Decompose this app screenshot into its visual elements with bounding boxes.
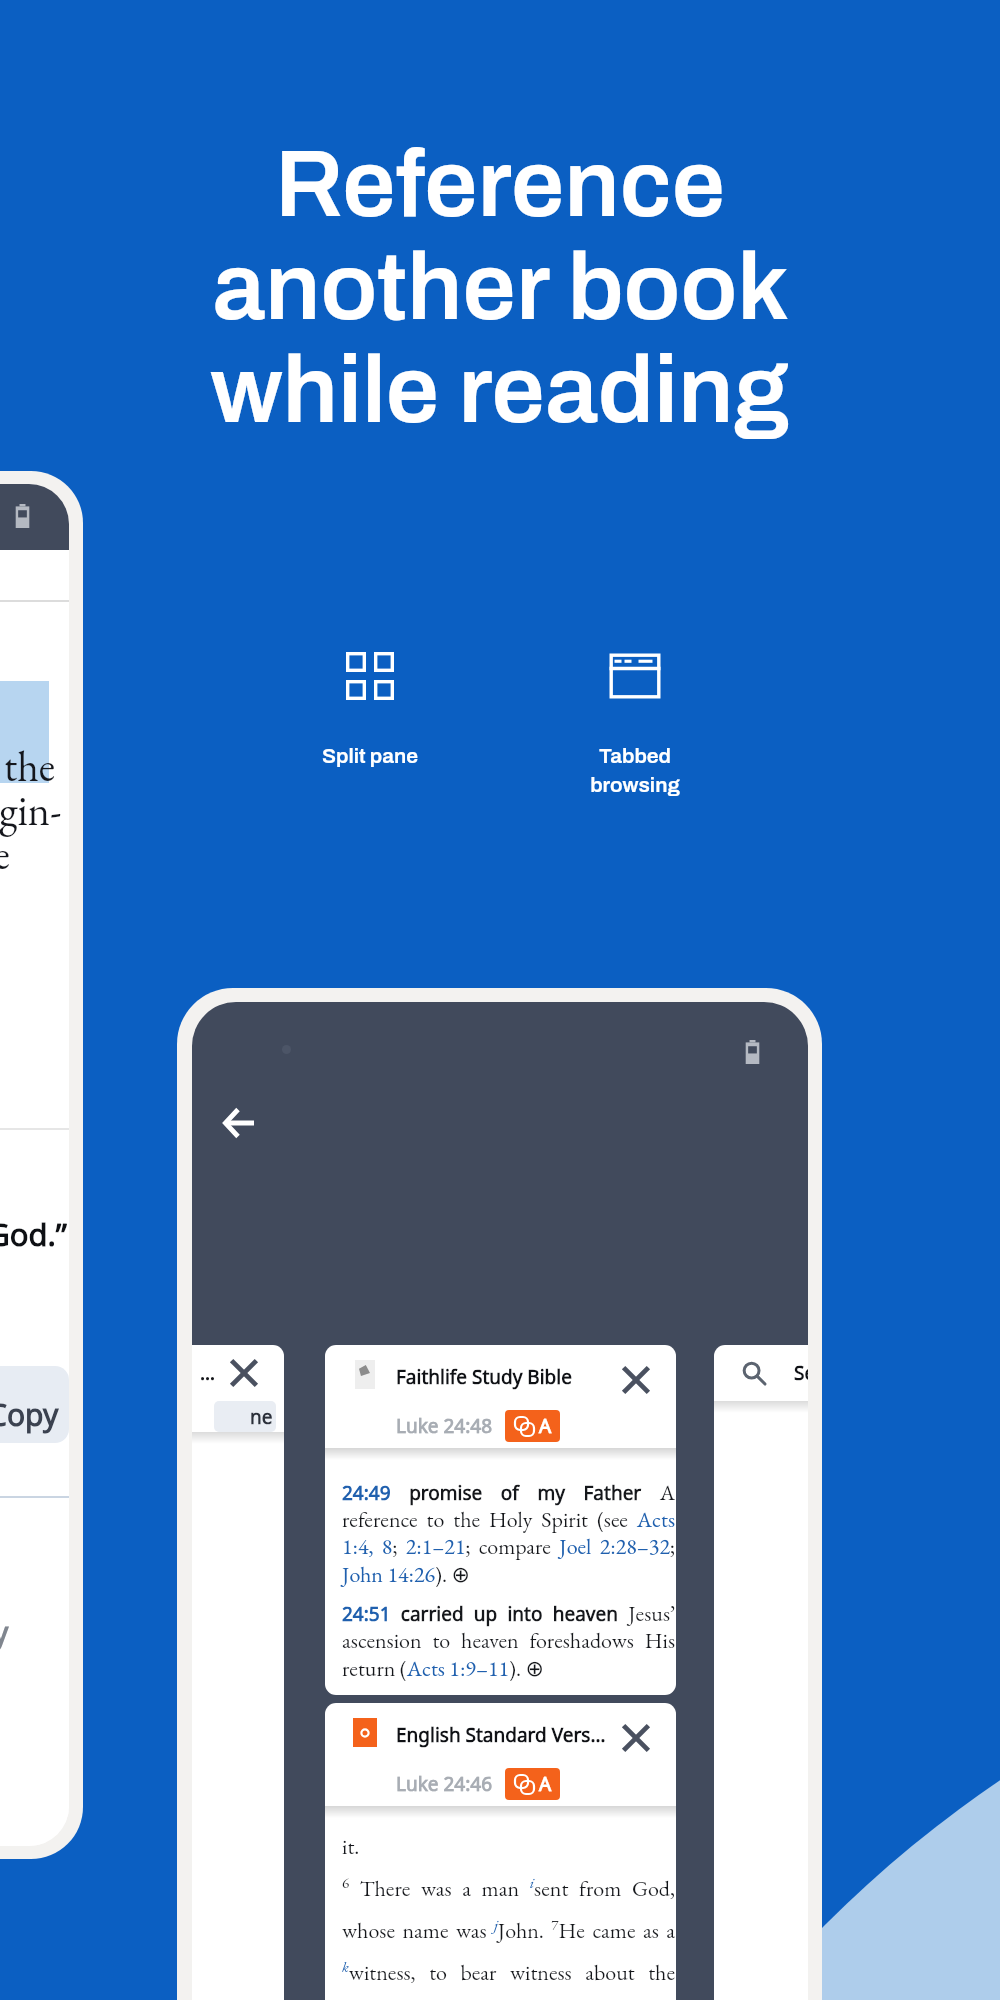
staticText: the Word was with the Lord, and the Word… [0,695,62,1101]
staticText: it. 6 There was a man isent from God, wh… [342,1832,675,2000]
staticText: ne [250,1404,273,1430]
staticText: Copy [0,1612,9,1653]
staticText: “…and the Word was God.” [0,1213,67,1255]
button[interactable]: Linked resources [505,1768,560,1800]
staticText: 24:51 carried up into heaven Jesus’ asce… [342,1599,675,1682]
staticText: Luke 24:48 [396,1413,493,1439]
button[interactable]: … [192,1345,284,2000]
staticText: Split pane [322,745,418,768]
button[interactable]: Copy [0,1366,69,1443]
button[interactable]: Linked resources [505,1410,560,1442]
button[interactable]: Faithlife Study Bible [325,1345,676,1695]
staticText: Reference [275,133,725,236]
staticText: A [539,1413,552,1439]
staticText: Tabbed browsing [590,745,680,797]
staticText: English Standard Vers… [396,1722,606,1748]
staticText: Copy [0,1394,59,1435]
button[interactable]: Search [714,1345,808,2000]
staticText: while reading [210,339,790,442]
button[interactable]: Tabbed browsing [555,648,715,797]
staticText: … [200,1360,216,1386]
button[interactable]: English Standard Vers… [325,1703,676,2000]
staticText: Faithlife Study Bible [396,1364,572,1390]
staticText: A [539,1771,552,1797]
staticText: Luke 24:46 [396,1771,493,1797]
staticText: 24:49 promise of my Father A reference t… [342,1478,675,1588]
button[interactable]: Split pane [290,648,450,768]
staticText: Search [794,1360,808,1386]
button[interactable]: Back [201,1085,277,1161]
staticText: another book [212,236,789,339]
